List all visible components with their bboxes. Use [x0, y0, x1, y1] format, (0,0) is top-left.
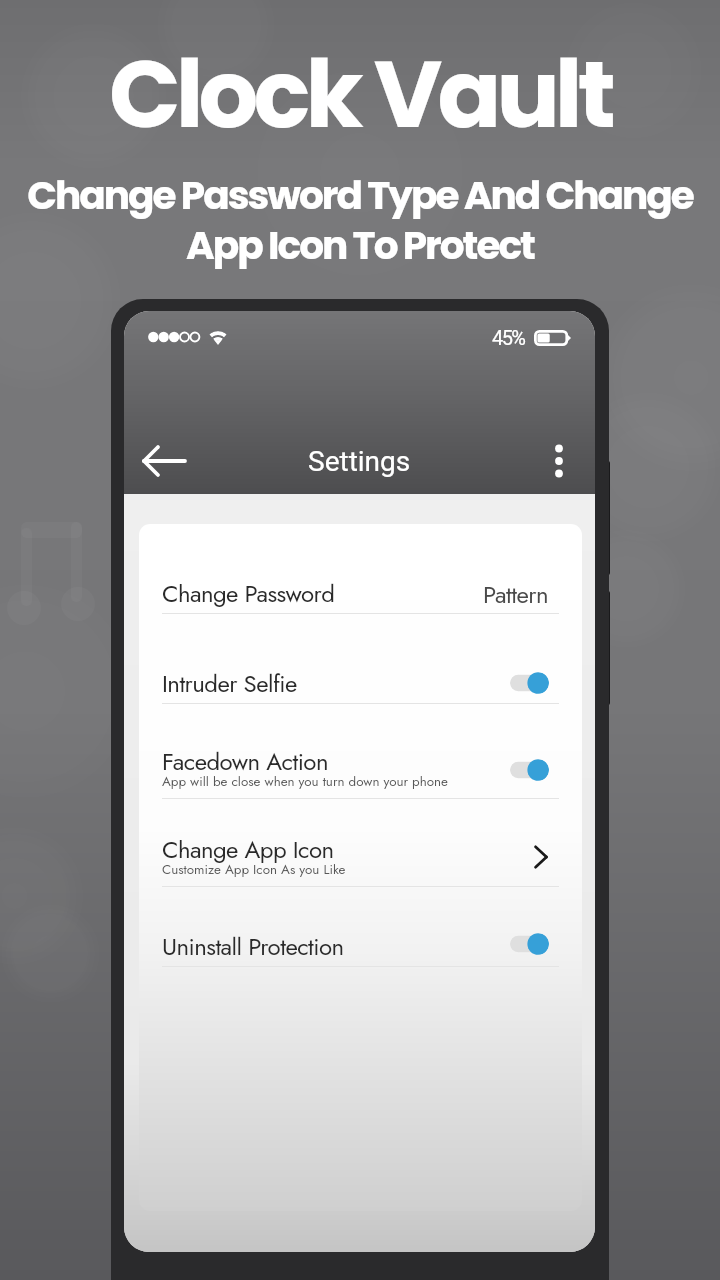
button[interactable]: Back — [136, 433, 192, 489]
staticText: Change App Icon — [162, 832, 334, 867]
staticText: Customize App Icon As you Like — [162, 860, 346, 879]
button[interactable]: More options — [535, 437, 583, 485]
staticText: Intruder Selfie — [162, 666, 297, 701]
button[interactable]: Toggle — [510, 759, 549, 781]
staticText: Change Password Type And Change App Icon… — [0, 168, 720, 272]
staticText: 45% — [492, 326, 525, 349]
button[interactable] — [139, 722, 582, 799]
button[interactable] — [139, 906, 582, 967]
button[interactable] — [139, 810, 582, 887]
staticText: Pattern — [483, 577, 549, 609]
button[interactable]: Toggle — [510, 672, 549, 694]
staticText: App will be close when you turn down you… — [162, 772, 448, 791]
staticText: Facedown Action — [162, 744, 328, 779]
staticText: Clock Vault — [0, 28, 720, 160]
button[interactable]: Toggle — [510, 933, 549, 955]
button[interactable]: Change App Icon — [533, 844, 549, 870]
staticText: Uninstall Protection — [162, 929, 344, 964]
button[interactable] — [139, 558, 582, 614]
button[interactable] — [139, 644, 582, 704]
staticText: Settings — [308, 445, 411, 478]
staticText: Change Password — [162, 576, 335, 611]
